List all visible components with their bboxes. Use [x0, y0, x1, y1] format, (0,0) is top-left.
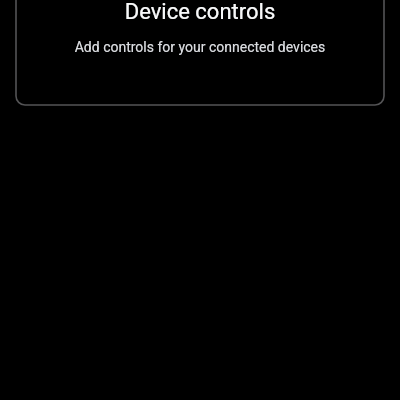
button[interactable]: Device controls	[0, 0, 400, 106]
staticText: Device controls	[24, 0, 376, 25]
staticText: Add controls for your connected devices	[24, 39, 376, 55]
